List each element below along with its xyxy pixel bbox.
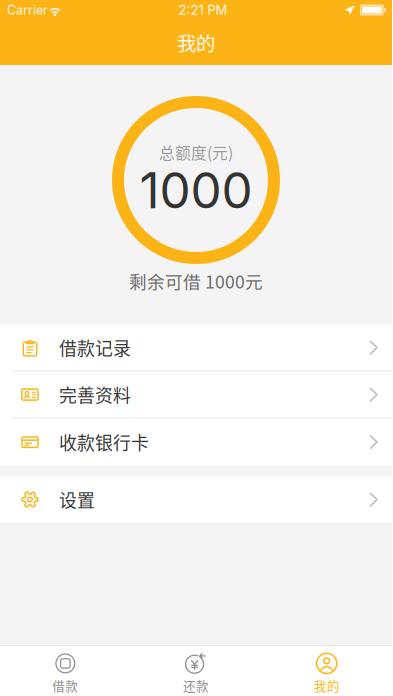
staticText: Carrier bbox=[7, 2, 48, 17]
button[interactable]: 收款银行卡 bbox=[0, 418, 392, 465]
button[interactable]: 借款记录 bbox=[0, 324, 392, 371]
staticText: 剩余可借 1000元 bbox=[129, 268, 263, 293]
staticText: 1000 bbox=[139, 160, 252, 220]
staticText: 我的 bbox=[314, 676, 340, 694]
button[interactable]: 设置 bbox=[0, 476, 392, 522]
staticText: 2:21 PM bbox=[178, 2, 227, 18]
button[interactable]: 完善资料 bbox=[0, 371, 392, 418]
staticText: 还款 bbox=[183, 676, 209, 694]
staticText: 总额度(元) bbox=[159, 141, 233, 164]
staticText: 我的 bbox=[177, 28, 215, 57]
staticText: 借款记录 bbox=[59, 335, 131, 360]
staticText: 设置 bbox=[59, 487, 95, 512]
staticText: 收款银行卡 bbox=[59, 429, 149, 455]
staticText: 完善资料 bbox=[59, 382, 131, 407]
staticText: 借款 bbox=[52, 676, 78, 694]
button[interactable]: 我的 bbox=[261, 646, 392, 696]
button[interactable]: 还款 bbox=[131, 646, 261, 696]
button[interactable]: 借款 bbox=[0, 646, 131, 696]
